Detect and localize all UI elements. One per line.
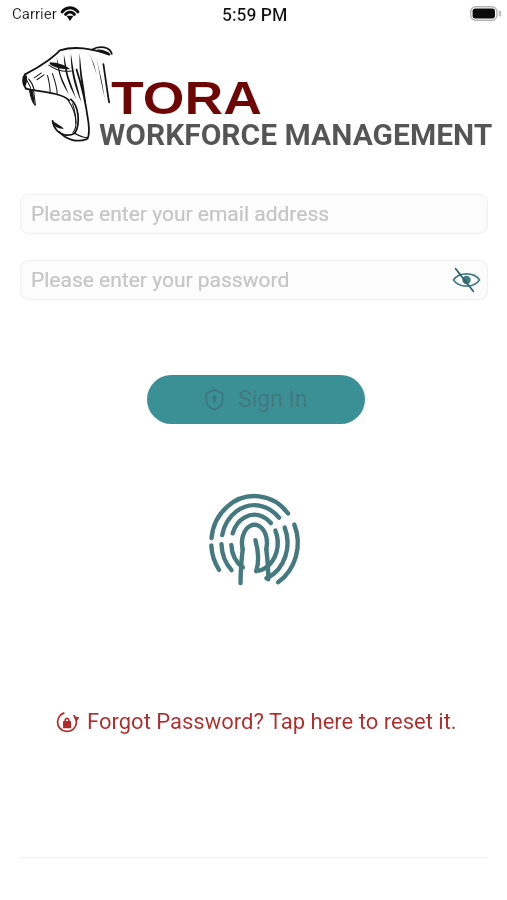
staticText: Please enter your password — [31, 268, 290, 293]
staticText: WORKFORCE MANAGEMENT — [99, 117, 493, 152]
button[interactable]: Please enter your password — [20, 260, 488, 300]
button[interactable]: Sign in with fingerprint — [204, 497, 304, 597]
staticText: Carrier — [12, 5, 57, 23]
staticText: 5:59 PM — [222, 5, 288, 26]
button[interactable]: Please enter your email address — [20, 194, 488, 234]
button[interactable]: Show password — [449, 263, 483, 297]
staticText: Please enter your email address — [31, 202, 330, 227]
staticText: Sign In — [238, 386, 308, 413]
button[interactable]: Forgot Password? Tap here to reset it. — [55, 709, 457, 735]
staticText: Forgot Password? Tap here to reset it. — [87, 709, 457, 735]
staticText: TORA — [111, 71, 263, 124]
button[interactable]: Sign In — [147, 375, 365, 424]
